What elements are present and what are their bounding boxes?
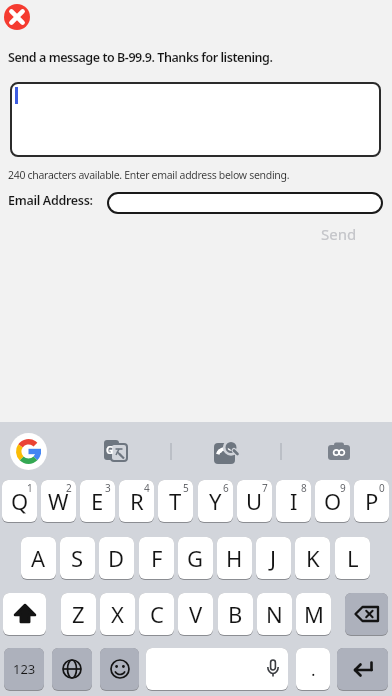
button[interactable] [3, 593, 46, 635]
staticText: . [311, 658, 316, 681]
button[interactable] [345, 593, 388, 635]
button[interactable]: X [100, 593, 135, 635]
button[interactable] [4, 4, 30, 30]
button[interactable]: A [21, 537, 56, 579]
staticText: 9 [340, 481, 346, 495]
button[interactable]: Send [321, 224, 357, 244]
staticText: 6 [223, 481, 229, 495]
button[interactable]: O [315, 480, 350, 522]
button[interactable] [337, 648, 388, 690]
button[interactable] [213, 441, 239, 467]
staticText: 0 [379, 481, 385, 495]
staticText: V [189, 599, 203, 629]
button[interactable] [146, 648, 288, 690]
staticText: 3 [105, 481, 111, 495]
button[interactable]: V [178, 593, 213, 635]
staticText: S [71, 543, 84, 573]
button[interactable]: W [41, 480, 76, 522]
staticText: M [304, 599, 324, 629]
button[interactable]: N [257, 593, 292, 635]
staticText: P [365, 486, 379, 516]
staticText: 240 characters available. Enter email ad… [8, 168, 290, 182]
button[interactable]: C [139, 593, 174, 635]
button[interactable]: D [99, 537, 134, 579]
staticText: O [324, 486, 342, 516]
button[interactable]: I [276, 480, 311, 522]
staticText: F [151, 543, 163, 573]
staticText: G [187, 543, 204, 573]
button[interactable]: . [296, 648, 330, 690]
staticText: D [108, 543, 125, 573]
button[interactable]: S [60, 537, 95, 579]
button[interactable]: G [178, 537, 213, 579]
button[interactable]: J [256, 537, 291, 579]
staticText: H [226, 543, 243, 573]
button[interactable] [10, 82, 381, 157]
staticText: R [130, 486, 144, 516]
button[interactable]: R [119, 480, 154, 522]
staticText: 1 [27, 481, 33, 495]
staticText: U [246, 486, 263, 516]
staticText: 2 [66, 481, 72, 495]
staticText: 8 [301, 481, 307, 495]
button[interactable]: B [218, 593, 253, 635]
button[interactable] [107, 192, 383, 214]
staticText: Q [11, 486, 29, 516]
button[interactable]: T [158, 480, 193, 522]
staticText: 7 [262, 481, 268, 495]
button[interactable]: G [104, 439, 128, 463]
button[interactable]: E [80, 480, 115, 522]
staticText: Y [209, 486, 222, 516]
button[interactable]: Y [198, 480, 233, 522]
button[interactable]: Z [61, 593, 96, 635]
button[interactable]: 123 [4, 648, 44, 690]
staticText: Send [321, 224, 357, 244]
staticText: K [306, 543, 320, 573]
staticText: L [347, 543, 359, 573]
staticText: E [91, 486, 104, 516]
staticText: X [111, 599, 124, 629]
button[interactable] [100, 648, 139, 690]
button[interactable]: L [335, 537, 370, 579]
button[interactable] [10, 433, 47, 470]
staticText: W [48, 486, 69, 516]
button[interactable]: F [139, 537, 174, 579]
button[interactable] [328, 441, 352, 465]
staticText: A [31, 543, 46, 573]
button[interactable] [52, 648, 92, 690]
button[interactable]: U [237, 480, 272, 522]
staticText: G [106, 443, 114, 457]
staticText: 123 [13, 660, 36, 678]
staticText: 4 [144, 481, 150, 495]
staticText: B [228, 599, 243, 629]
staticText: Z [72, 599, 85, 629]
staticText: I [290, 486, 298, 516]
button[interactable]: Q [2, 480, 37, 522]
staticText: T [169, 486, 182, 516]
button[interactable]: K [295, 537, 330, 579]
button[interactable]: H [217, 537, 252, 579]
staticText: J [270, 543, 277, 573]
staticText: C [150, 599, 164, 629]
staticText: N [266, 599, 283, 629]
staticText: 5 [183, 481, 189, 495]
staticText: Send a message to B-99.9. Thanks for lis… [8, 49, 273, 66]
button[interactable]: P [354, 480, 389, 522]
staticText: Email Address: [8, 192, 93, 209]
button[interactable]: M [296, 593, 331, 635]
